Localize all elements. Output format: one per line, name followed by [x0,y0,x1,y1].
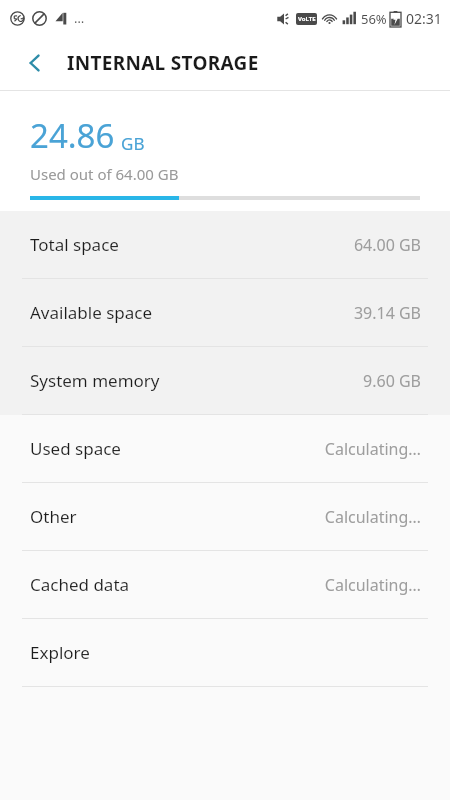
staticText: 9.60 GB [363,370,421,392]
staticText: Calculating… [324,438,421,460]
button[interactable]: Explore [0,619,450,686]
staticText: VoLTE [298,15,316,23]
staticText: 39.14 GB [353,302,421,324]
button[interactable]: Other [0,483,450,550]
staticText: … [74,9,85,27]
staticText: Explore [30,641,90,664]
staticText: Calculating… [324,574,421,596]
staticText: 56% [361,10,387,28]
button[interactable]: Available space [0,279,450,346]
button[interactable]: System memory [0,347,450,414]
staticText: Cached data [30,573,130,596]
button[interactable]: Used space [0,415,450,482]
staticText: Total space [30,233,119,256]
staticText: 02:31 [406,9,442,28]
staticText: 64.00 GB [353,234,421,256]
button[interactable]: Total space [0,211,450,278]
staticText: GB [121,132,145,155]
staticText: Other [30,505,77,528]
staticText: Calculating… [324,506,421,528]
button[interactable]: Back [13,41,57,85]
staticText: 24.86 [30,113,115,158]
button[interactable]: Cached data [0,551,450,618]
staticText: Used out of 64.00 GB [30,164,179,184]
staticText: System memory [30,369,160,392]
staticText: Available space [30,301,153,324]
staticText: INTERNAL STORAGE [67,50,259,76]
staticText: Used space [30,437,121,460]
